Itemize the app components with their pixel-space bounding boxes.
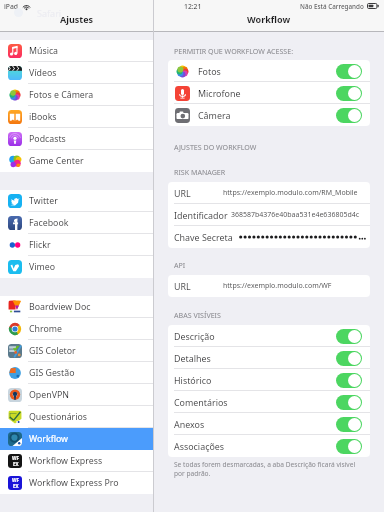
staticText: iBooks [29, 111, 57, 123]
staticText: Twitter [29, 195, 58, 207]
button[interactable]: Podcasts [0, 128, 154, 150]
button[interactable]: Facebook [0, 212, 154, 234]
staticText: Anexos [174, 418, 205, 430]
staticText: Chave Secreta [174, 231, 233, 243]
staticText: API [174, 260, 186, 270]
staticText: Câmera [198, 109, 231, 121]
staticText: Ajustes [60, 13, 94, 25]
staticText: Facebook [29, 217, 69, 229]
button[interactable]: Toggle [336, 108, 362, 123]
staticText: URL [174, 280, 191, 292]
staticText: Música [29, 45, 59, 57]
staticText: URL [174, 187, 191, 199]
button[interactable]: URL [168, 275, 370, 297]
staticText: Workflow [29, 433, 69, 445]
button[interactable]: iBooks [0, 106, 154, 128]
button[interactable]: Toggle [336, 329, 362, 344]
button[interactable]: Fotos e Câmera [0, 84, 154, 106]
staticText: Workflow Express Pro [29, 477, 119, 489]
button[interactable]: Toggle [336, 395, 362, 410]
staticText: por padrão. [174, 469, 211, 478]
staticText: PERMITIR QUE WORKFLOW ACESSE: [174, 46, 294, 56]
button[interactable]: GIS Coletor [0, 340, 154, 362]
button[interactable]: Vídeos [0, 62, 154, 84]
button[interactable]: URL [168, 182, 370, 204]
staticText: Fotos e Câmera [29, 89, 94, 101]
button[interactable]: Flickr [0, 234, 154, 256]
staticText: GIS Coletor [29, 345, 76, 357]
button[interactable]: Boardview Doc [0, 296, 154, 318]
button[interactable]: OpenVPN [0, 384, 154, 406]
button[interactable]: Câmera [168, 104, 370, 126]
staticText: Workflow [247, 13, 291, 25]
staticText: Histórico [174, 374, 212, 386]
staticText: Podcasts [29, 133, 66, 145]
button[interactable]: Microfone [168, 82, 370, 104]
button[interactable]: Associações [168, 435, 370, 457]
staticText: Se todas forem desmarcadas, a aba Descri… [174, 460, 356, 469]
button[interactable]: Toggle [336, 417, 362, 432]
button[interactable]: Música [0, 40, 154, 62]
button[interactable]: Comentários [168, 391, 370, 413]
staticText: OpenVPN [29, 389, 69, 401]
staticText: Associações [174, 440, 225, 452]
button[interactable]: Toggle [336, 86, 362, 101]
button[interactable]: Toggle [336, 351, 362, 366]
staticText: 368587b4376e40baa531e4e636805d4c [231, 210, 360, 220]
staticText: Game Center [29, 155, 84, 167]
button[interactable]: Fotos [168, 60, 370, 82]
button[interactable]: Histórico [168, 369, 370, 391]
staticText: ABAS VISÍVEIS [174, 310, 221, 320]
button[interactable]: Vimeo [0, 256, 154, 278]
staticText: AJUSTES DO WORKFLOW [174, 142, 257, 152]
staticText: Flickr [29, 239, 51, 251]
staticText: https://exemplo.modulo.com/WF [223, 281, 332, 291]
button[interactable]: Questionários [0, 406, 154, 428]
button[interactable]: WF [0, 472, 154, 494]
staticText: EX [13, 483, 19, 489]
button[interactable]: Game Center [0, 150, 154, 172]
button[interactable]: Descrição [168, 325, 370, 347]
button[interactable]: Identificador [168, 204, 370, 226]
staticText: Comentários [174, 396, 228, 408]
staticText: Safari [37, 7, 62, 19]
button[interactable]: WF [0, 450, 154, 472]
staticText: Microfone [198, 87, 241, 99]
button[interactable]: Anexos [168, 413, 370, 435]
staticText: Não Está Carregando [300, 2, 364, 11]
staticText: Detalhes [174, 352, 211, 364]
button[interactable]: Chrome [0, 318, 154, 340]
button[interactable]: Workflow [0, 428, 154, 450]
staticText: Descrição [174, 330, 215, 342]
staticText: Vimeo [29, 261, 56, 273]
button[interactable]: Toggle [336, 373, 362, 388]
staticText: Boardview Doc [29, 301, 91, 313]
staticText: https://exemplo.modulo.com/RM_Mobile [223, 188, 358, 198]
staticText: iPad [4, 2, 19, 11]
staticText: Identificador [174, 209, 228, 221]
staticText: EX [13, 461, 19, 467]
button[interactable]: Toggle [336, 64, 362, 79]
staticText: WF [12, 455, 19, 461]
staticText: Questionários [29, 411, 88, 423]
button[interactable]: Twitter [0, 190, 154, 212]
button[interactable]: Detalhes [168, 347, 370, 369]
staticText: Vídeos [29, 67, 57, 79]
staticText: Fotos [198, 65, 221, 77]
staticText: WF [12, 477, 19, 483]
button[interactable]: Toggle [336, 439, 362, 454]
button[interactable]: GIS Gestão [0, 362, 154, 384]
staticText: 12:21 [184, 2, 202, 11]
staticText: GIS Gestão [29, 367, 75, 379]
staticText: Workflow Express [29, 455, 103, 467]
button[interactable]: Chave Secreta [168, 226, 370, 248]
staticText: Chrome [29, 323, 62, 335]
staticText: RISK MANAGER [174, 167, 226, 177]
